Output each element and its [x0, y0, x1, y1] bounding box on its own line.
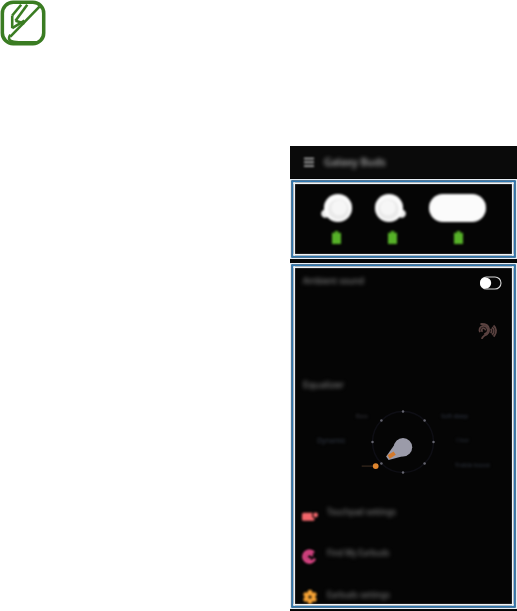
button[interactable]: Find My Earbuds [290, 542, 517, 566]
staticText: Galaxy Buds [324, 155, 386, 169]
staticText: Clear [456, 436, 470, 443]
staticText: Soft deep [441, 412, 468, 420]
button[interactable]: Ambient sound [290, 272, 517, 294]
staticText: Bass [356, 412, 368, 419]
staticText: Dynamic [317, 436, 346, 446]
button[interactable]: Ambient sound toggle [479, 277, 501, 289]
staticText: Ambient sound [303, 275, 365, 287]
button[interactable]: Menu [301, 154, 317, 170]
staticText: Touchpad settings [327, 506, 396, 517]
button[interactable]: Equalizer dial [363, 402, 443, 482]
staticText: Earbuds settings [327, 589, 390, 600]
staticText: Find My Earbuds [327, 547, 390, 558]
staticText: Treble boost [455, 461, 490, 469]
button[interactable]: Ambient sound level [479, 323, 498, 339]
staticText: Equalizer [303, 378, 344, 391]
button[interactable]: Touchpad settings [290, 501, 517, 525]
button[interactable]: Earbuds settings [290, 584, 517, 608]
